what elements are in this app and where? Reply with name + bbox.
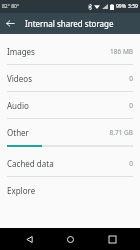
staticText: 82° 80°	[2, 3, 20, 10]
staticText: Other	[7, 127, 29, 138]
button[interactable]: Audio	[0, 92, 140, 119]
button[interactable]: Other	[0, 119, 140, 150]
staticText: Videos	[7, 73, 32, 84]
staticText: 0	[129, 159, 133, 168]
staticText: Cached data	[7, 158, 54, 169]
button[interactable]: Recent apps	[99, 228, 125, 250]
button[interactable]: Back	[0, 13, 21, 34]
staticText: Internal shared storage	[25, 18, 114, 29]
staticText: Explore	[7, 185, 36, 196]
staticText: 8.71 GB	[109, 128, 133, 137]
staticText: 0	[129, 74, 133, 83]
staticText: 0	[129, 101, 133, 110]
staticText: Audio	[7, 100, 29, 111]
button[interactable]: Back	[16, 228, 42, 250]
button[interactable]: Home	[57, 228, 83, 250]
staticText: Images	[7, 46, 35, 57]
staticText: 3:59	[128, 3, 138, 10]
button[interactable]: Cached data	[0, 150, 140, 177]
button[interactable]: Images	[0, 38, 140, 65]
staticText: 99%	[116, 3, 126, 10]
staticText: 186 MB	[110, 47, 133, 56]
button[interactable]: Videos	[0, 65, 140, 92]
button[interactable]: Explore	[0, 177, 140, 203]
